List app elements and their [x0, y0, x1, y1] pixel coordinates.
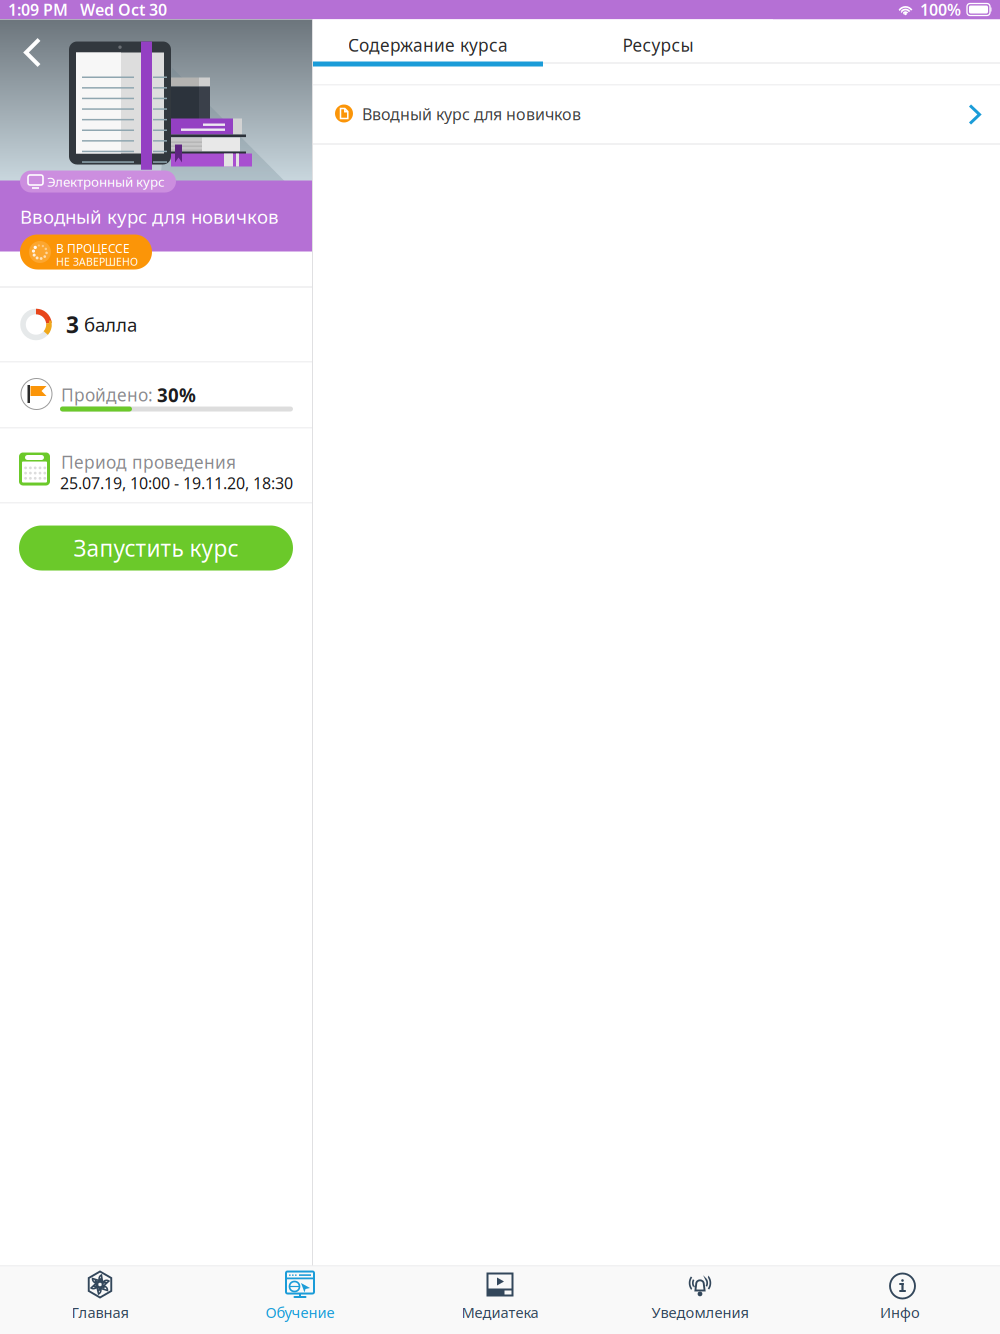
button[interactable]: Инфо	[800, 1266, 1000, 1334]
staticText: В ПРОЦЕССЕ	[56, 240, 130, 256]
button[interactable]: Содержание курса	[313, 19, 543, 63]
staticText: Период проведения	[61, 450, 236, 473]
button[interactable]: Back	[8, 21, 58, 83]
button[interactable]: Главная	[0, 1266, 200, 1334]
button[interactable]: Обучение	[200, 1266, 400, 1334]
button[interactable]: Ресурсы	[543, 19, 773, 63]
button[interactable]: Уведомления	[600, 1266, 800, 1334]
staticText: Содержание курса	[348, 33, 508, 56]
staticText: Обучение	[265, 1302, 334, 1322]
staticText: 30%	[157, 382, 196, 407]
staticText: Вводный курс для новичков	[362, 103, 581, 125]
staticText: Уведомления	[651, 1302, 748, 1322]
staticText: Медиатека	[461, 1302, 538, 1322]
button[interactable]: Медиатека	[400, 1266, 600, 1334]
button[interactable]: Электронный курс	[20, 170, 176, 192]
staticText: 1:09 PM	[8, 0, 68, 20]
staticText: Вводный курс для новичков	[20, 204, 279, 229]
staticText: Инфо	[880, 1302, 920, 1322]
staticText: Главная	[71, 1302, 128, 1322]
staticText: Ресурсы	[622, 33, 693, 56]
staticText: Wed Oct 30	[80, 0, 167, 20]
staticText: 3	[66, 309, 79, 339]
staticText: 100%	[920, 0, 961, 20]
staticText: Пройдено:	[61, 383, 153, 406]
staticText: Электронный курс	[47, 173, 165, 190]
button[interactable]: Запустить курс	[19, 525, 293, 570]
staticText: балла	[84, 312, 137, 337]
staticText: Запустить курс	[73, 533, 238, 563]
button[interactable]: Вводный курс для новичков	[313, 85, 1000, 143]
staticText: 25.07.19, 10:00 - 19.11.20, 18:30	[60, 472, 293, 494]
button[interactable]: В ПРОЦЕССЕ	[20, 234, 152, 269]
staticText: НЕ ЗАВЕРШЕНО	[56, 254, 138, 269]
